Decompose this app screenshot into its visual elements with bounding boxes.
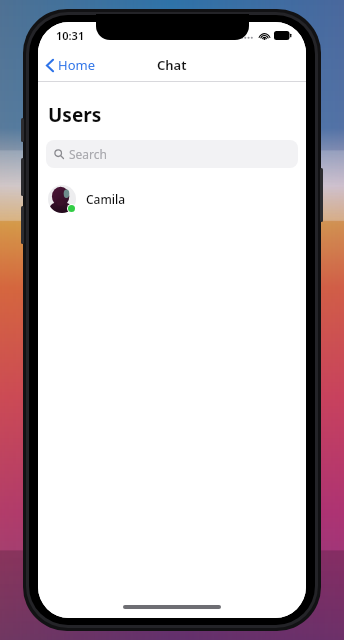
button[interactable]: Search: [46, 140, 298, 168]
staticText: Search: [69, 146, 107, 162]
button[interactable]: Home: [38, 51, 103, 79]
staticText: Users: [48, 102, 102, 128]
staticText: Home: [58, 56, 95, 74]
staticText: 10:31: [56, 28, 85, 43]
button[interactable]: Camila: [38, 182, 306, 216]
staticText: Camila: [86, 191, 126, 207]
staticText: Chat: [157, 56, 187, 74]
